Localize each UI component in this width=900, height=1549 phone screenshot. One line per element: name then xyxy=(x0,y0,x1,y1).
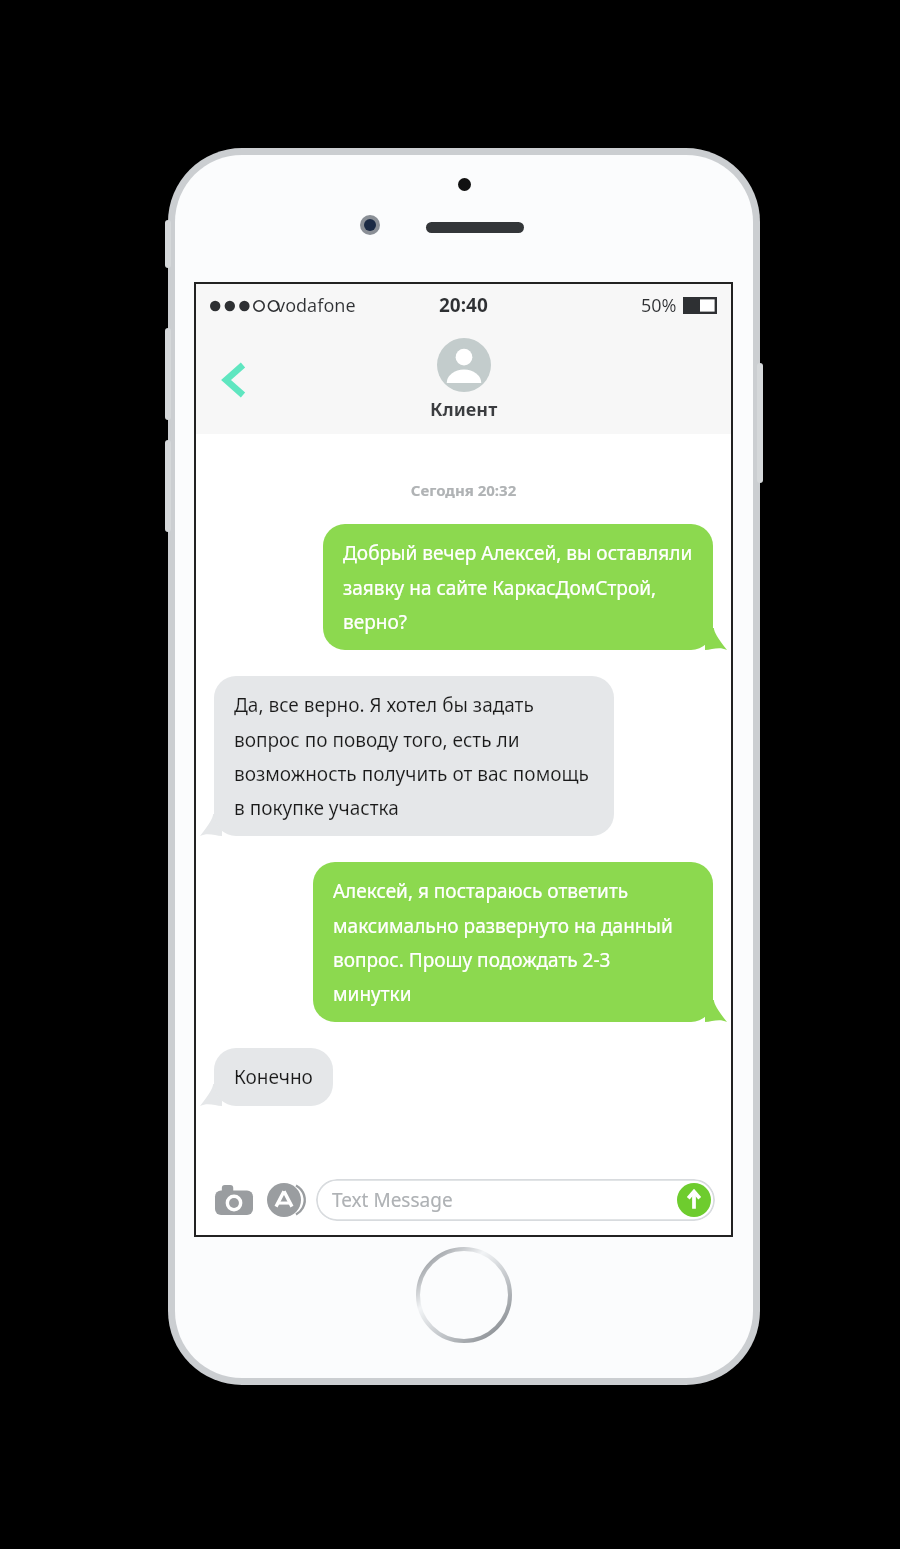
staticText: Алексей, я постараюсь ответить максималь… xyxy=(333,878,693,1006)
button[interactable]: Алексей, я постараюсь ответить максималь… xyxy=(313,862,713,1022)
button[interactable]: Apps xyxy=(262,1178,306,1222)
button[interactable]: Send xyxy=(677,1183,711,1217)
button[interactable]: Text Message xyxy=(316,1179,715,1221)
staticText: Text Message xyxy=(332,1187,453,1213)
staticText: 50% xyxy=(641,293,677,318)
staticText: vodafone xyxy=(276,293,356,318)
staticText: Да, все верно. Я хотел бы задать вопрос … xyxy=(234,692,594,820)
staticText: Добрый вечер Алексей, вы оставляли заявк… xyxy=(343,540,693,634)
button[interactable]: Добрый вечер Алексей, вы оставляли заявк… xyxy=(323,524,713,650)
button[interactable]: Клиент xyxy=(430,338,498,422)
button[interactable]: Camera xyxy=(212,1178,256,1222)
staticText: Клиент xyxy=(430,397,498,422)
button[interactable]: Home xyxy=(416,1247,512,1343)
staticText: Конечно xyxy=(234,1064,313,1090)
button[interactable]: Back xyxy=(206,353,260,407)
button[interactable]: Конечно xyxy=(214,1048,333,1106)
staticText: Сегодня 20:32 xyxy=(196,480,731,500)
button[interactable]: Да, все верно. Я хотел бы задать вопрос … xyxy=(214,676,614,836)
staticText: 20:40 xyxy=(439,292,488,318)
